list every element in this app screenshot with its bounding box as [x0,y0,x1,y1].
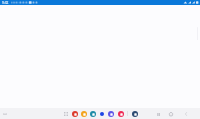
button[interactable]: Recent apps [154,110,162,118]
staticText: 9:32 [2,1,9,5]
button[interactable]: Home [167,110,175,118]
button[interactable]: Messages [89,110,97,118]
button[interactable]: Chrome [98,110,106,118]
button[interactable]: Camera [117,110,125,118]
button[interactable]: Drive [71,110,79,118]
button[interactable]: Files [80,110,88,118]
button[interactable]: Gallery [107,110,115,118]
button[interactable]: Back [182,110,190,118]
button[interactable]: All apps [62,110,70,118]
button[interactable]: Settings [131,110,139,118]
button[interactable]: Screenshot [1,110,9,118]
